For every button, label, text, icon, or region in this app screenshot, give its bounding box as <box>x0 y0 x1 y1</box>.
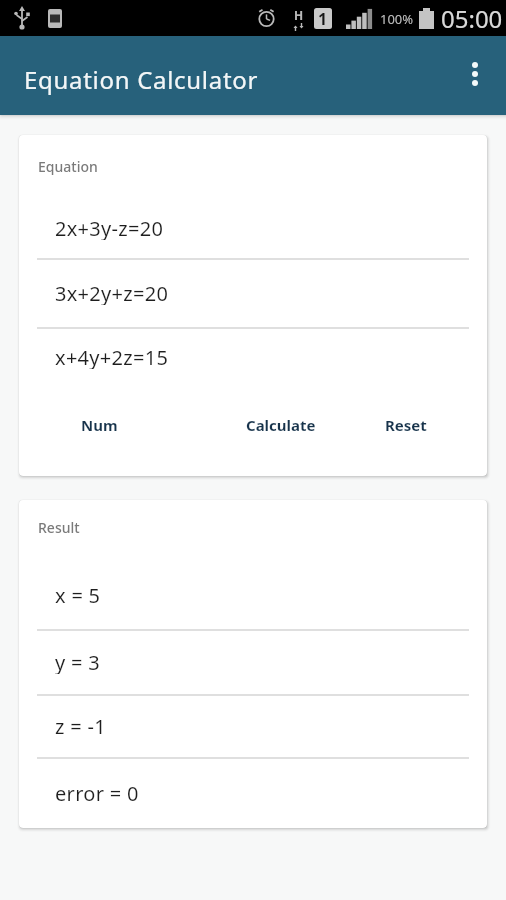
button[interactable]: 3x+2y+z=20 <box>19 280 487 305</box>
staticText: 2x+3y-z=20 <box>55 215 164 240</box>
staticText: error = 0 <box>55 780 139 805</box>
staticText: Num <box>81 415 118 435</box>
button[interactable]: Reset <box>366 407 446 443</box>
staticText: Result <box>38 518 80 537</box>
staticText: Equation <box>38 157 98 176</box>
staticText: x = 5 <box>55 582 101 607</box>
staticText: Calculate <box>246 415 316 435</box>
staticText: Equation Calculator <box>24 63 259 96</box>
staticText: 1 <box>318 8 328 29</box>
button[interactable]: Calculate <box>226 407 336 443</box>
staticText: 100% <box>380 10 414 28</box>
staticText: y = 3 <box>55 649 100 674</box>
staticText: Reset <box>385 415 427 435</box>
staticText: x+4y+2z=15 <box>55 344 169 369</box>
staticText: H <box>294 7 304 23</box>
button[interactable] <box>461 56 489 96</box>
button[interactable]: 2x+3y-z=20 <box>19 215 487 240</box>
staticText: 05:00 <box>441 2 503 35</box>
button[interactable]: x+4y+2z=15 <box>19 344 487 369</box>
staticText: z = -1 <box>55 713 106 738</box>
button[interactable]: Num <box>55 407 143 443</box>
staticText: 3x+2y+z=20 <box>55 280 169 305</box>
